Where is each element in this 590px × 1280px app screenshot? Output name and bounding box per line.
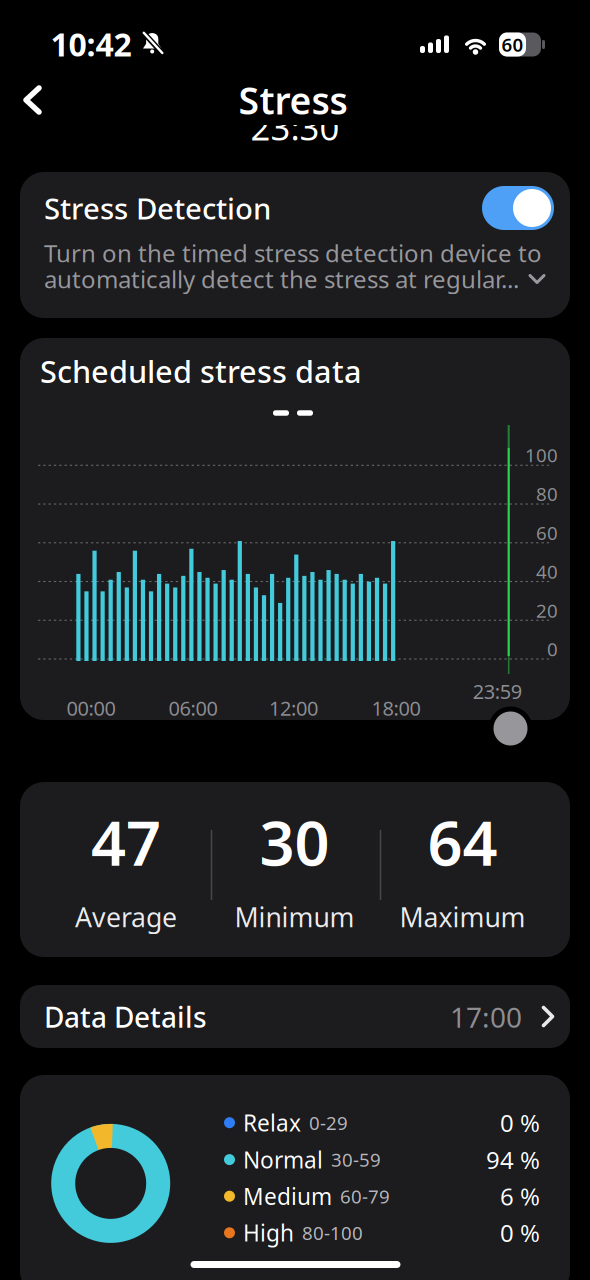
button[interactable]: Back <box>23 85 43 115</box>
staticText: Maximum <box>399 899 525 935</box>
staticText: 0 % <box>500 1107 540 1139</box>
staticText: Stress <box>238 75 347 125</box>
button[interactable]: Stress Detection on <box>482 186 554 230</box>
staticText: 6 % <box>500 1180 540 1212</box>
staticText: 40 <box>536 559 558 584</box>
staticText: Stress Detection <box>44 188 271 227</box>
staticText: 60 <box>501 32 523 57</box>
button[interactable]: Time selector handle <box>493 711 527 745</box>
staticText: 0 % <box>500 1217 540 1249</box>
staticText: Normal <box>243 1144 323 1175</box>
staticText: 80-100 <box>302 1220 363 1245</box>
button[interactable]: Data Details <box>20 985 570 1048</box>
staticText: 80 <box>536 481 558 506</box>
staticText: 23:30 <box>250 104 339 150</box>
staticText: Data Details <box>44 998 207 1036</box>
staticText: 60-79 <box>340 1184 390 1209</box>
staticText: 06:00 <box>168 695 217 721</box>
staticText: High <box>243 1218 294 1248</box>
staticText: 10:42 <box>50 23 131 65</box>
staticText: 100 <box>525 443 558 467</box>
staticText: 12:00 <box>269 695 318 721</box>
staticText: Average <box>75 899 177 935</box>
button[interactable]: Expand <box>528 273 546 284</box>
staticText: Medium <box>243 1181 332 1211</box>
staticText: Relax <box>243 1108 301 1138</box>
staticText: Minimum <box>234 899 354 935</box>
staticText: 60 <box>536 520 558 545</box>
staticText: Turn on the timed stress detection devic… <box>44 237 542 269</box>
staticText: 30-59 <box>331 1147 381 1172</box>
staticText: 94 % <box>486 1144 540 1176</box>
staticText: 00:00 <box>66 695 115 721</box>
staticText: 17:00 <box>450 998 522 1036</box>
staticText: 47 <box>91 801 161 883</box>
staticText: 64 <box>427 801 497 883</box>
staticText: 20 <box>536 598 558 623</box>
staticText: automatically detect the stress at regul… <box>44 263 519 295</box>
staticText: 18:00 <box>371 695 420 721</box>
staticText: Scheduled stress data <box>40 351 362 391</box>
staticText: 30 <box>259 801 329 883</box>
staticText: 0-29 <box>309 1110 348 1135</box>
staticText: 0 <box>547 637 558 661</box>
staticText: 23:59 <box>473 678 522 705</box>
